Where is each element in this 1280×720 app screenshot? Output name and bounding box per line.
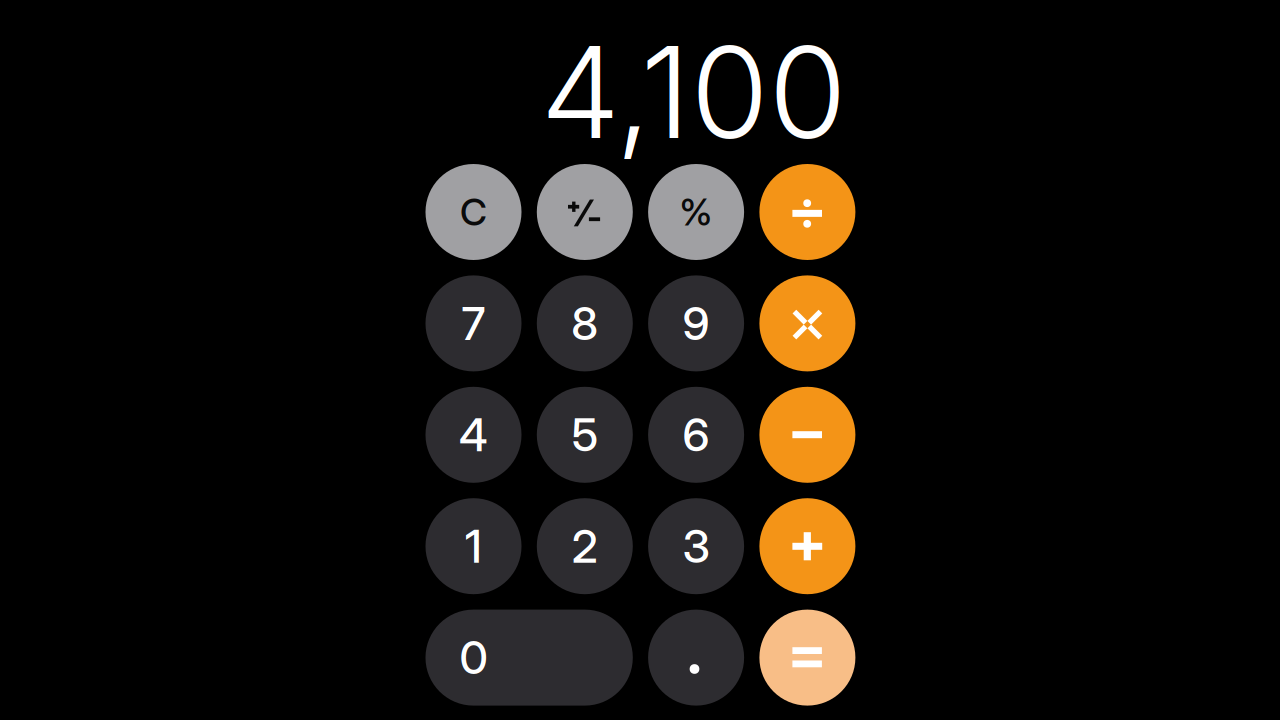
button[interactable]: Multiply <box>759 275 855 371</box>
button[interactable]: 4 <box>425 387 521 483</box>
button[interactable]: 8 <box>537 275 633 371</box>
staticText: 3 <box>683 519 710 574</box>
button[interactable]: Plus minus <box>537 164 633 260</box>
staticText: 1 <box>465 519 482 574</box>
staticText: 9 <box>683 296 710 351</box>
staticText: 7 <box>461 296 485 351</box>
button[interactable]: 7 <box>425 275 521 371</box>
button[interactable]: % <box>648 164 744 260</box>
button[interactable]: C <box>425 164 521 260</box>
button[interactable]: 1 <box>425 498 521 594</box>
button[interactable]: Decimal point <box>648 610 744 706</box>
staticText: 8 <box>571 296 598 351</box>
staticText: C <box>460 189 487 235</box>
button[interactable]: 9 <box>648 275 744 371</box>
button[interactable]: 5 <box>537 387 633 483</box>
staticText: 2 <box>572 519 598 574</box>
staticText: 5 <box>572 407 598 462</box>
button[interactable]: 0 <box>425 610 633 706</box>
button[interactable]: Divide <box>759 164 855 260</box>
button[interactable]: 6 <box>648 387 744 483</box>
staticText: 4,100 <box>541 15 847 169</box>
button[interactable]: Equals <box>759 610 855 706</box>
button[interactable]: Add <box>759 498 855 594</box>
staticText: 6 <box>683 407 710 462</box>
staticText: 4 <box>459 407 488 462</box>
button[interactable]: 2 <box>537 498 633 594</box>
button[interactable]: Subtract <box>759 387 855 483</box>
staticText: 0 <box>459 630 487 685</box>
staticText: % <box>680 189 713 235</box>
button[interactable]: 3 <box>648 498 744 594</box>
